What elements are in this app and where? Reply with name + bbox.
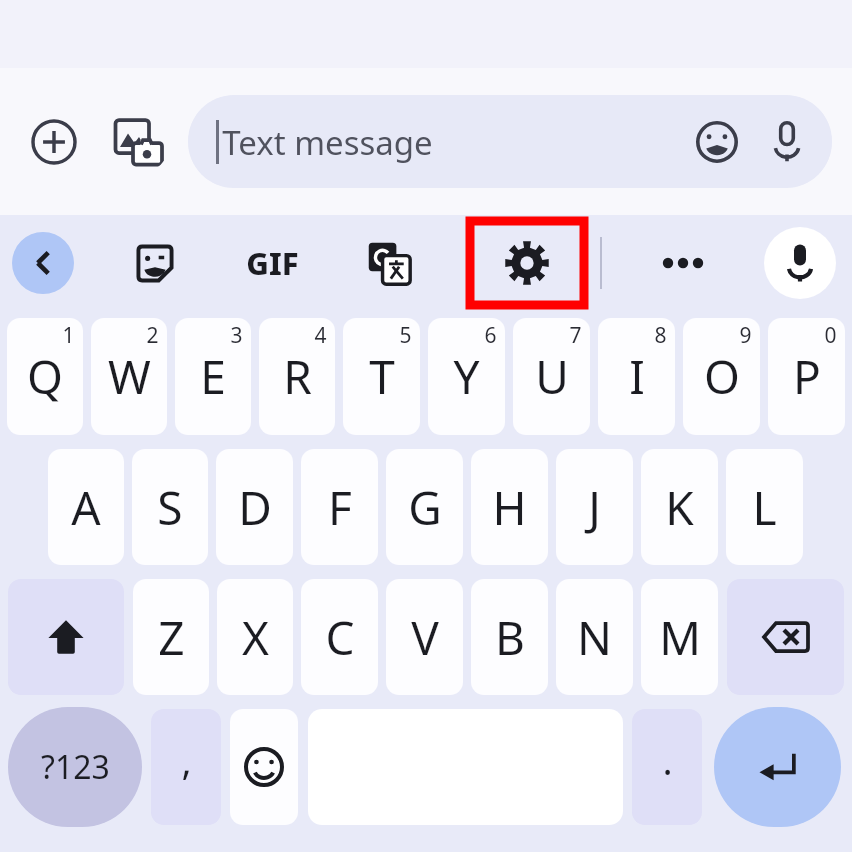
button[interactable]: More options (647, 227, 719, 299)
staticText: V (411, 606, 439, 669)
staticText: Text message (222, 120, 433, 165)
staticText: 7 (569, 321, 582, 350)
button[interactable]: Add attachment (22, 110, 86, 174)
button[interactable]: S (132, 449, 208, 565)
staticText: C (325, 606, 355, 669)
button[interactable]: G (386, 449, 463, 565)
staticText: E (200, 345, 226, 408)
button[interactable]: C (301, 579, 378, 695)
button[interactable]: L (726, 449, 803, 565)
button[interactable]: , (151, 709, 221, 825)
button[interactable]: ?123 (8, 707, 142, 827)
staticText: K (665, 476, 694, 539)
button[interactable]: B (471, 579, 548, 695)
staticText: 9 (739, 321, 752, 350)
button[interactable]: Shift (8, 579, 124, 695)
button[interactable]: T (343, 318, 420, 435)
button[interactable]: Enter (714, 707, 841, 827)
button[interactable]: Text message (188, 95, 832, 188)
staticText: I (629, 345, 645, 408)
staticText: P (793, 345, 821, 408)
staticText: Q (27, 345, 63, 408)
staticText: 0 (824, 321, 837, 350)
button[interactable]: W (91, 318, 167, 435)
button[interactable]: O (683, 318, 760, 435)
staticText: O (704, 345, 740, 408)
staticText: U (535, 345, 569, 408)
button[interactable]: Gallery and camera (106, 110, 170, 174)
button[interactable]: Y (428, 318, 505, 435)
staticText: 8 (654, 321, 667, 350)
staticText: D (238, 476, 272, 539)
staticText: 3 (230, 321, 243, 350)
button[interactable]: A (48, 449, 124, 565)
button[interactable]: Voice input (756, 111, 818, 173)
staticText: 2 (146, 321, 159, 350)
button[interactable]: Backspace (727, 579, 844, 695)
staticText: R (283, 345, 312, 408)
staticText: L (752, 476, 777, 539)
staticText: Z (158, 606, 185, 669)
button[interactable]: V (386, 579, 463, 695)
staticText: 6 (484, 321, 497, 350)
staticText: J (588, 476, 601, 539)
button[interactable]: Q (7, 318, 83, 435)
staticText: G (408, 476, 442, 539)
staticText: , (181, 734, 192, 786)
button[interactable]: J (556, 449, 633, 565)
button[interactable]: GIF (236, 227, 308, 299)
staticText: 1 (62, 321, 75, 350)
button[interactable]: K (641, 449, 718, 565)
staticText: GIF (246, 242, 299, 284)
button[interactable]: I (598, 318, 675, 435)
staticText: S (157, 476, 183, 539)
button[interactable]: E (175, 318, 251, 435)
button[interactable]: Stickers (119, 227, 191, 299)
staticText: H (492, 476, 527, 539)
button[interactable]: D (216, 449, 293, 565)
button[interactable]: Emoji keyboard (230, 709, 298, 825)
staticText: 5 (399, 321, 412, 350)
button[interactable]: Z (133, 579, 209, 695)
button[interactable]: . (632, 709, 702, 825)
staticText: Y (453, 345, 480, 408)
button[interactable]: N (556, 579, 633, 695)
button[interactable]: Emoji (686, 111, 748, 173)
button[interactable]: P (768, 318, 845, 435)
button[interactable]: X (217, 579, 293, 695)
staticText: A (71, 476, 101, 539)
button[interactable]: R (259, 318, 335, 435)
staticText: N (577, 606, 612, 669)
staticText: W (108, 345, 151, 408)
staticText: ?123 (41, 745, 110, 789)
button[interactable]: Back (12, 232, 74, 294)
button[interactable]: F (301, 449, 378, 565)
button[interactable]: U (513, 318, 590, 435)
staticText: . (662, 734, 673, 786)
staticText: F (328, 476, 352, 539)
staticText: T (369, 345, 395, 408)
button[interactable]: H (471, 449, 548, 565)
staticText: X (242, 606, 269, 669)
staticText: B (495, 606, 525, 669)
staticText: M (659, 606, 701, 669)
staticText: 4 (314, 321, 327, 350)
button[interactable]: Settings (470, 221, 584, 305)
button[interactable]: Voice typing (764, 227, 836, 299)
button[interactable]: M (641, 579, 718, 695)
button[interactable]: Translate (353, 227, 425, 299)
